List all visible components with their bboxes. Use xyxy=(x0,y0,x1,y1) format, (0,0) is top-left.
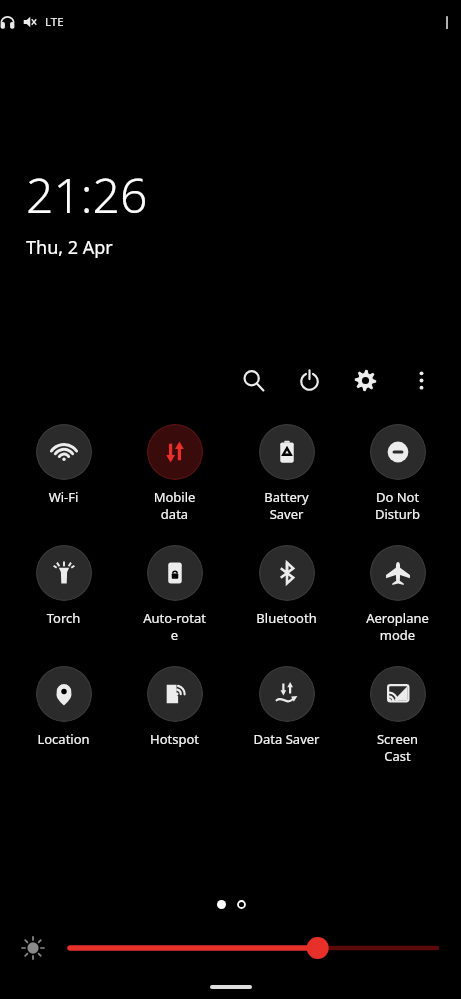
staticText: Bluetooth xyxy=(234,609,339,627)
staticText: Thu, 2 Apr xyxy=(26,235,461,260)
button[interactable]: Screen Cast xyxy=(345,664,450,767)
staticText: Location xyxy=(11,730,116,748)
staticText: Auto-rotat e xyxy=(122,609,227,644)
button[interactable]: More options xyxy=(401,360,441,400)
button[interactable]: Aeroplane mode xyxy=(345,543,450,646)
staticText: Battery Saver xyxy=(234,488,339,523)
staticText: Screen Cast xyxy=(345,730,450,765)
staticText: 21:26 xyxy=(26,162,461,227)
staticText: Torch xyxy=(11,609,116,627)
staticText: Do Not Disturb xyxy=(345,488,450,523)
button[interactable]: Wi-Fi xyxy=(11,422,116,508)
button[interactable]: Search xyxy=(233,360,273,400)
button[interactable]: Page 1 xyxy=(212,895,230,913)
button[interactable]: Torch xyxy=(11,543,116,629)
button[interactable]: Do Not Disturb xyxy=(345,422,450,525)
button[interactable]: Location xyxy=(11,664,116,750)
button[interactable]: Mobile data xyxy=(122,422,227,525)
button[interactable]: Settings xyxy=(345,360,385,400)
staticText: Data Saver xyxy=(234,730,339,748)
button[interactable]: Data Saver xyxy=(234,664,339,750)
button[interactable]: Battery Saver xyxy=(234,422,339,525)
staticText: Wi-Fi xyxy=(11,488,116,506)
button[interactable]: Brightness slider xyxy=(70,931,437,965)
button[interactable]: Power xyxy=(289,360,329,400)
button[interactable]: Bluetooth xyxy=(234,543,339,629)
staticText: Mobile data xyxy=(122,488,227,523)
staticText: Aeroplane mode xyxy=(345,609,450,644)
button[interactable]: Page 2 xyxy=(232,895,250,913)
button[interactable]: Hotspot xyxy=(122,664,227,750)
staticText: Hotspot xyxy=(122,730,227,748)
staticText: LTE xyxy=(45,14,447,30)
button[interactable]: Auto-rotat e xyxy=(122,543,227,646)
button[interactable]: Brightness xyxy=(18,933,48,963)
